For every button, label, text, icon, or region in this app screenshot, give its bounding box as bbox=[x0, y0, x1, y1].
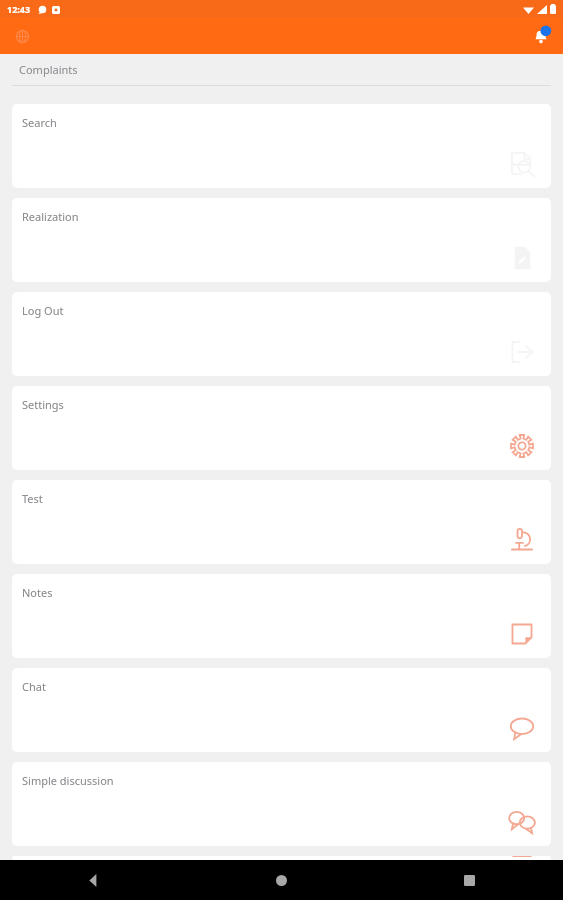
staticText: Complaints bbox=[19, 62, 78, 77]
button[interactable]: Notes bbox=[12, 574, 551, 658]
button[interactable]: Realization bbox=[12, 198, 551, 282]
button[interactable]: Search bbox=[12, 104, 551, 188]
button[interactable]: Logs bbox=[12, 856, 551, 860]
staticText: 12:43 bbox=[7, 3, 31, 15]
button[interactable]: Recent apps bbox=[375, 860, 563, 900]
button[interactable]: Back bbox=[0, 860, 187, 900]
button[interactable]: Log Out bbox=[12, 292, 551, 376]
button[interactable]: Settings bbox=[12, 386, 551, 470]
button[interactable]: Language bbox=[8, 22, 36, 50]
staticText: Realization bbox=[22, 209, 79, 224]
button[interactable]: Home bbox=[187, 860, 375, 900]
staticText: Simple discussion bbox=[22, 773, 114, 788]
staticText: Test bbox=[22, 491, 43, 506]
staticText: Notes bbox=[22, 585, 53, 600]
staticText: Settings bbox=[22, 397, 64, 412]
button[interactable]: Chat bbox=[12, 668, 551, 752]
button[interactable]: Simple discussion bbox=[12, 762, 551, 846]
staticText: Search bbox=[22, 115, 57, 130]
button[interactable]: Notifications bbox=[525, 20, 557, 52]
button[interactable]: Test bbox=[12, 480, 551, 564]
staticText: Chat bbox=[22, 679, 46, 694]
staticText: Log Out bbox=[22, 303, 64, 318]
